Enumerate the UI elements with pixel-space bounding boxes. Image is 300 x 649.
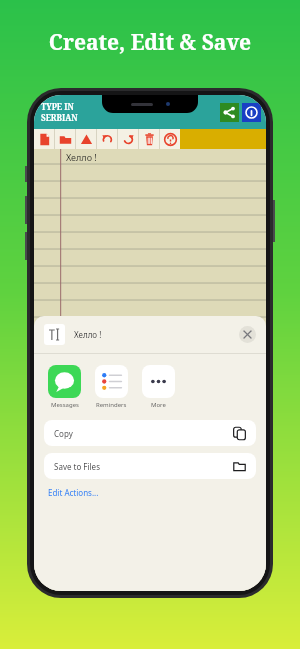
staticText: TYPE IN (41, 101, 74, 112)
button[interactable]: Redo (118, 129, 138, 149)
staticText: Create, Edit & Save (0, 28, 300, 57)
button[interactable]: Save to Files (44, 453, 256, 479)
button[interactable]: More (142, 365, 175, 409)
staticText: Reminders (96, 401, 127, 409)
staticText: SERBIAN (41, 112, 78, 123)
button[interactable]: New (34, 129, 54, 149)
staticText: Save to Files (54, 461, 100, 472)
staticText: Хелло ! (74, 329, 102, 340)
staticText: Хелло ! (66, 151, 97, 163)
staticText: Copy (54, 428, 73, 439)
button[interactable]: Close (239, 326, 256, 343)
staticText: More (151, 401, 166, 409)
button[interactable]: Delete (139, 129, 159, 149)
button[interactable]: Share (220, 103, 239, 122)
button[interactable]: Help (160, 129, 180, 149)
button[interactable]: Open (55, 129, 75, 149)
button[interactable]: Drive (76, 129, 96, 149)
button[interactable]: Info (242, 103, 261, 122)
staticText: Messages (51, 401, 79, 409)
button[interactable]: Messages (48, 365, 81, 409)
button[interactable]: Reminders (95, 365, 128, 409)
button[interactable]: Edit Actions... (48, 487, 99, 498)
button[interactable]: Copy (44, 420, 256, 446)
button[interactable]: Undo (97, 129, 117, 149)
